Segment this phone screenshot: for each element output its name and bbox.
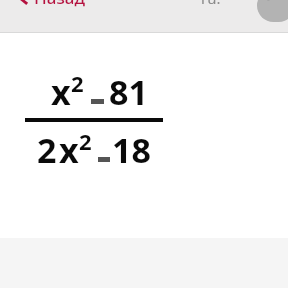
button[interactable]: Back: [14, 0, 87, 9]
staticText: 81: [109, 69, 148, 115]
other: Back: [16, 0, 30, 5]
staticText: x: [59, 127, 79, 173]
button[interactable]: Account: [257, 0, 288, 22]
staticText: 2: [79, 126, 92, 156]
staticText: 18: [112, 127, 151, 173]
staticText: Назад: [34, 0, 85, 9]
staticText: 2: [71, 68, 84, 98]
staticText: x: [51, 69, 71, 115]
staticText: 2: [37, 127, 57, 173]
staticText: ru.: [201, 0, 221, 8]
